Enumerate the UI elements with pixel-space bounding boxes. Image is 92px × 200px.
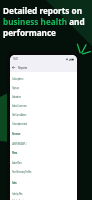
staticText: Subscription totals xyxy=(12,122,27,126)
staticText: Subscriptions xyxy=(12,77,24,81)
button[interactable]: Active Customers xyxy=(10,101,77,110)
staticText: Non Renewing Profiles xyxy=(12,170,32,174)
button[interactable]: Sales by Agent xyxy=(10,198,77,200)
staticText: Reports xyxy=(18,66,27,70)
button[interactable]: Net Cancellations xyxy=(10,110,77,119)
staticText: Sales by Agent xyxy=(12,199,24,200)
button[interactable]: Activations xyxy=(10,92,77,101)
staticText: 9:41 xyxy=(13,57,18,61)
button[interactable]: Back xyxy=(10,63,77,72)
other: Back xyxy=(12,66,15,69)
staticText: Plans xyxy=(12,151,17,155)
button[interactable]: Subscriptions xyxy=(10,74,77,83)
staticText: Net Cancellations xyxy=(12,113,27,117)
staticText: Signups xyxy=(12,86,19,90)
button[interactable]: Signups xyxy=(10,83,77,92)
staticText: Revenue xyxy=(12,132,21,136)
staticText: Sales xyxy=(12,181,17,185)
staticText: Detailed reports on xyxy=(3,5,82,16)
staticText: performance xyxy=(3,27,56,38)
button[interactable]: Subscription totals xyxy=(10,119,77,128)
staticText: Active Customers xyxy=(12,104,27,108)
button[interactable]: Non Renewing Profiles xyxy=(10,167,77,176)
staticText: Active Plans xyxy=(12,161,22,165)
staticText: Sales by Plan xyxy=(12,192,23,196)
staticText: ARR/MRR/ARPU xyxy=(12,142,27,146)
staticText: Activations xyxy=(12,95,21,99)
button[interactable]: Sales by Plan xyxy=(10,189,77,198)
staticText: business health and xyxy=(3,16,85,27)
button[interactable]: Active Plans xyxy=(10,158,77,167)
button[interactable]: ARR/MRR/ARPU xyxy=(10,139,77,148)
